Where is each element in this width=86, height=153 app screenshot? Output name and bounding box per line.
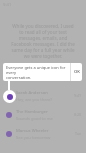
staticText: Marcus Wheeler xyxy=(16,128,49,134)
staticText: OK xyxy=(74,69,80,75)
staticText: Sarah Anderson xyxy=(16,90,48,96)
staticText: Tue xyxy=(75,131,82,136)
staticText: Sounds good to me xyxy=(16,116,53,121)
staticText: 9:41 xyxy=(74,93,82,98)
staticText: The Hamburger xyxy=(16,109,48,115)
staticText: Everyone gets a unique icon for every co… xyxy=(6,65,69,80)
button[interactable]: Sarah Anderson xyxy=(0,86,86,105)
staticText: While you discovered, I used to read all… xyxy=(11,23,75,59)
staticText: See you tomorrow xyxy=(16,135,51,140)
button[interactable]: Contact avatar xyxy=(3,90,16,103)
staticText: 9:41 xyxy=(3,2,12,8)
button[interactable]: The Hamburger xyxy=(0,105,86,124)
button[interactable]: Marcus Wheeler xyxy=(0,124,86,143)
staticText: 8:20 xyxy=(74,112,82,117)
button[interactable]: OK xyxy=(71,63,82,81)
staticText: Hey, are you there? xyxy=(16,97,52,102)
